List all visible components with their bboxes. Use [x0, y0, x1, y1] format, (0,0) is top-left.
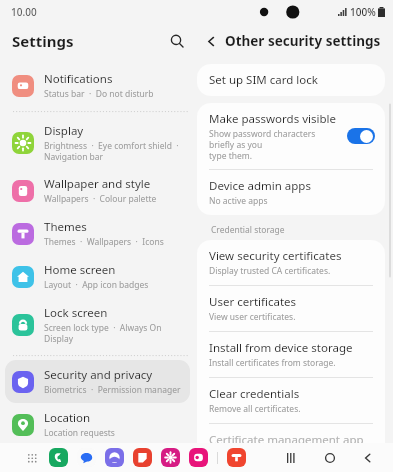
staticText: Screen lock type · Always On Display: [44, 322, 183, 344]
staticText: None: [209, 449, 231, 461]
staticText: Home screen: [44, 262, 116, 278]
staticText: Settings: [12, 31, 74, 51]
staticText: User certificates: [209, 294, 297, 310]
staticText: Show password characters briefly as you …: [209, 128, 341, 161]
button[interactable]: Themes: [5, 212, 190, 255]
staticText: Themes · Wallpapers · Icons: [44, 236, 164, 248]
button[interactable]: Display: [5, 116, 190, 169]
staticText: Lock screen: [44, 305, 108, 321]
staticText: Location requests: [44, 427, 115, 439]
button[interactable]: Back: [203, 32, 387, 50]
staticText: Wallpaper and style: [44, 176, 151, 192]
other: Back: [203, 33, 219, 49]
staticText: View security certificates: [209, 248, 342, 264]
staticText: 100%: [350, 5, 376, 19]
staticText: Display trusted CA certificates.: [209, 265, 331, 277]
staticText: Notifications: [44, 71, 113, 87]
staticText: Themes: [44, 219, 87, 235]
button[interactable]: Certificate management app: [197, 424, 385, 469]
staticText: Device admin apps: [209, 178, 311, 194]
staticText: Security and privacy: [44, 367, 153, 383]
button[interactable]: Lock screen: [5, 298, 190, 351]
staticText: Remove all certificates.: [209, 403, 301, 415]
staticText: Brightness · Eye comfort shield · Naviga…: [44, 140, 179, 162]
staticText: Display: [44, 123, 84, 139]
staticText: Layout · App icon badges: [44, 279, 149, 291]
staticText: Biometrics · Permission manager: [44, 384, 181, 396]
staticText: Wallpapers · Colour palette: [44, 193, 157, 205]
button[interactable]: Notifications: [5, 64, 190, 107]
button[interactable]: Security and privacy: [5, 360, 190, 403]
button[interactable]: Recent app: [227, 448, 246, 467]
button[interactable]: Notes: [133, 448, 152, 467]
staticText: Install from device storage: [209, 340, 353, 356]
staticText: Install certificates from storage.: [209, 357, 336, 369]
staticText: Make passwords visible: [209, 111, 336, 127]
button[interactable]: Search settings: [164, 28, 190, 54]
button[interactable]: Device admin apps: [197, 170, 385, 215]
button[interactable]: User certificates: [197, 286, 385, 331]
button[interactable]: Home screen: [5, 255, 190, 298]
staticText: 10.00: [11, 5, 37, 19]
staticText: Certificate management app: [209, 432, 364, 448]
button[interactable]: Make passwords visible: [197, 103, 385, 169]
button[interactable]: View security certificates: [197, 240, 385, 285]
button[interactable]: Recent apps: [283, 449, 301, 467]
button[interactable]: Back: [359, 449, 377, 467]
button[interactable]: Make passwords visible toggle, on: [347, 128, 375, 144]
staticText: Safety and emergency: [44, 453, 165, 465]
button[interactable]: Instagram: [189, 448, 208, 467]
staticText: Location: [44, 410, 91, 426]
button[interactable]: Clear credentials: [197, 378, 385, 423]
staticText: Clear credentials: [209, 386, 300, 402]
staticText: Other security settings: [225, 32, 381, 50]
button[interactable]: Internet: [105, 448, 124, 467]
button[interactable]: Home: [321, 449, 339, 467]
staticText: Credential storage: [211, 224, 285, 236]
button[interactable]: Messages: [77, 448, 96, 467]
button[interactable]: Location: [5, 403, 190, 446]
button[interactable]: Install from device storage: [197, 332, 385, 377]
staticText: No active apps: [209, 195, 268, 207]
button[interactable]: All apps: [24, 450, 40, 466]
staticText: Set up SIM card lock: [209, 72, 318, 88]
button[interactable]: Set up SIM card lock: [197, 64, 385, 96]
button[interactable]: Snapchat: [161, 448, 180, 467]
staticText: Status bar · Do not disturb: [44, 88, 154, 100]
button[interactable]: Phone: [49, 448, 68, 467]
staticText: View user certificates.: [209, 311, 296, 323]
button[interactable]: Safety and emergency: [5, 446, 190, 472]
button[interactable]: Wallpaper and style: [5, 169, 190, 212]
